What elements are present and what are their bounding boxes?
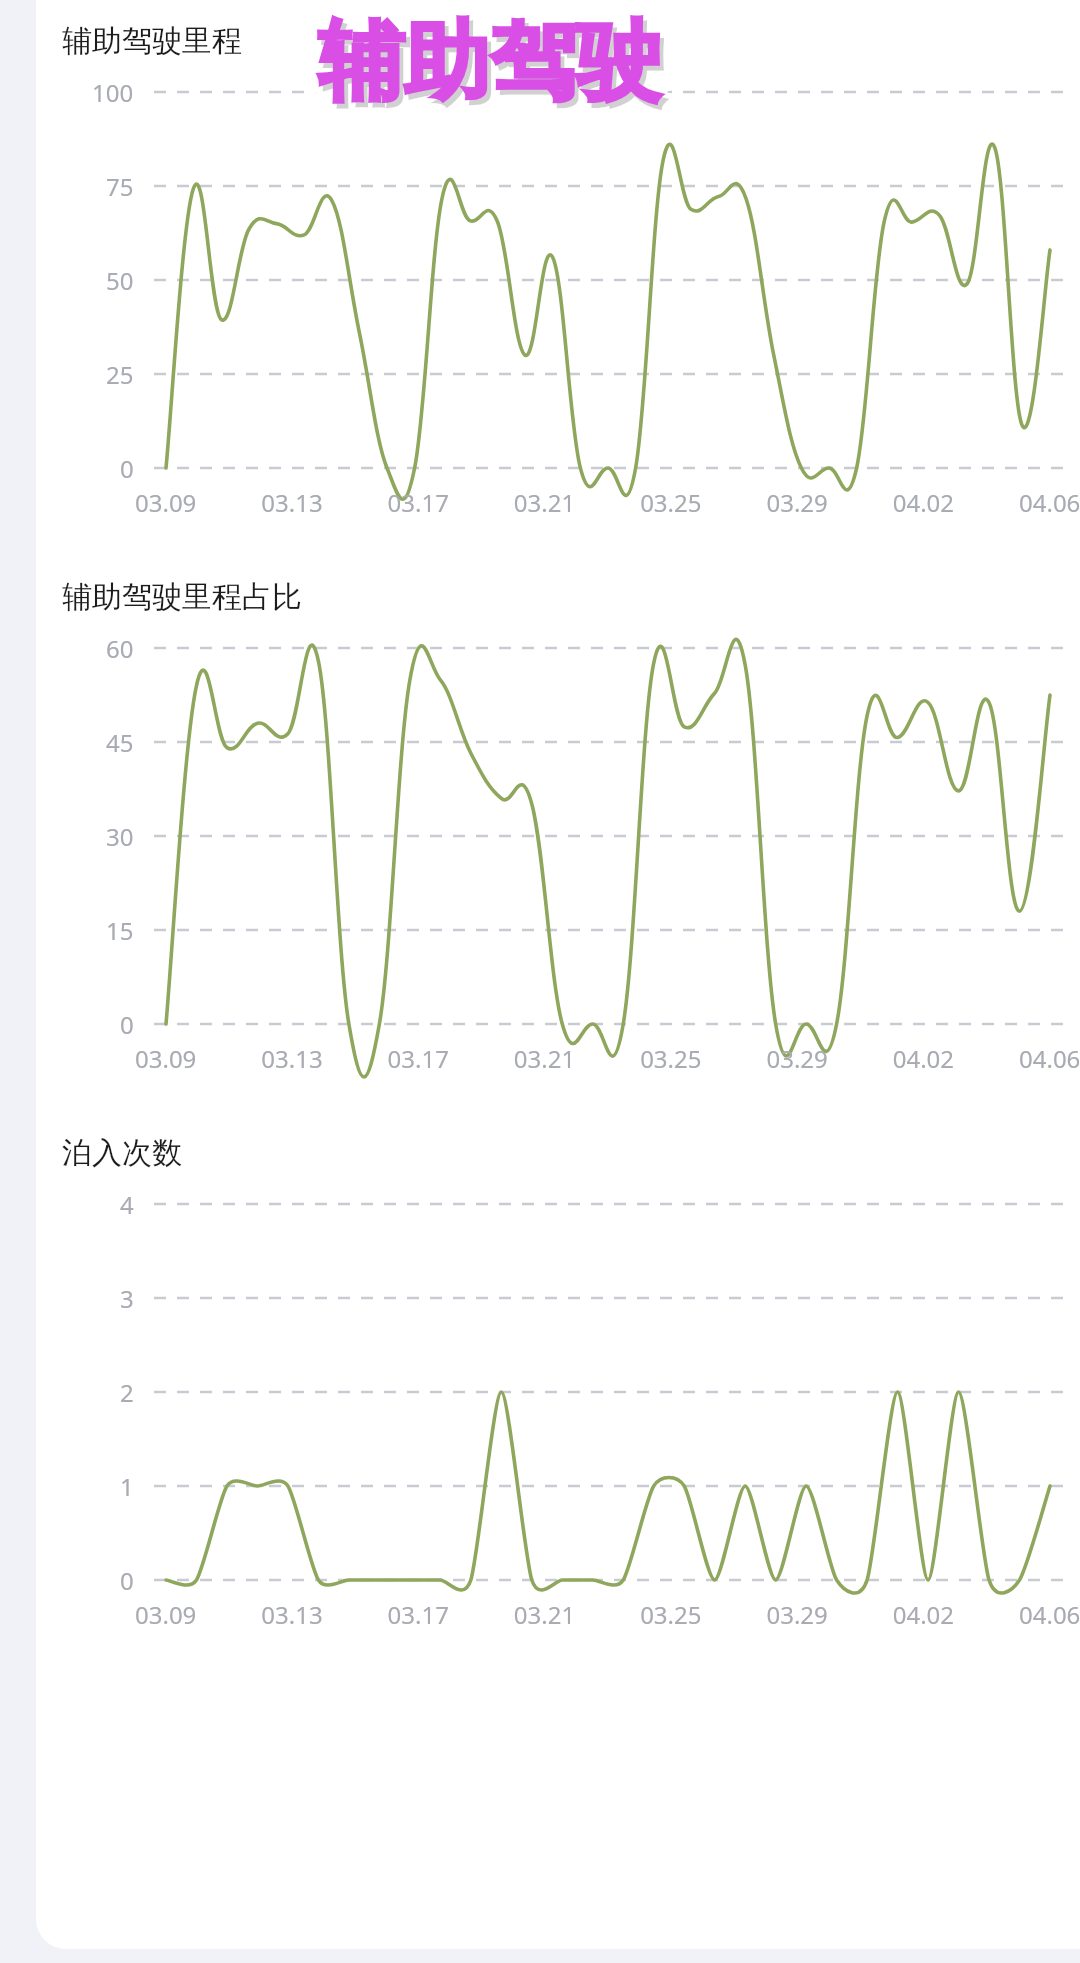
- staticText: 辅助驾驶: [315, 17, 659, 125]
- staticText: 辅助驾驶: [318, 15, 662, 123]
- button[interactable]: 泊入次数: [36, 1086, 1080, 1642]
- button[interactable]: 辅助驾驶里程占比: [36, 530, 1080, 1086]
- button[interactable]: 辅助驾驶里程: [36, 0, 1080, 530]
- staticText: 辅助驾驶: [318, 1, 662, 109]
- staticText: 辅助驾驶: [311, 8, 655, 116]
- staticText: 泊入次数: [62, 1134, 182, 1172]
- staticText: 辅助驾驶: [312, 2, 656, 110]
- staticText: 辅助驾驶: [324, 2, 668, 110]
- staticText: 辅助驾驶: [309, 5, 653, 113]
- staticText: 辅助驾驶: [321, 0, 665, 107]
- staticText: 辅助驾驶: [312, 14, 656, 122]
- staticText: 辅助驾驶: [324, 14, 668, 122]
- staticText: 辅助驾驶: [318, 8, 662, 116]
- staticText: 辅助驾驶: [327, 11, 671, 119]
- staticText: 辅助驾驶: [325, 8, 669, 116]
- other: 辅助驾驶 watermark: [318, 8, 662, 116]
- staticText: 辅助驾驶: [322, 13, 666, 121]
- staticText: 辅助驾驶里程占比: [62, 578, 302, 616]
- staticText: 辅助驾驶里程: [62, 22, 242, 60]
